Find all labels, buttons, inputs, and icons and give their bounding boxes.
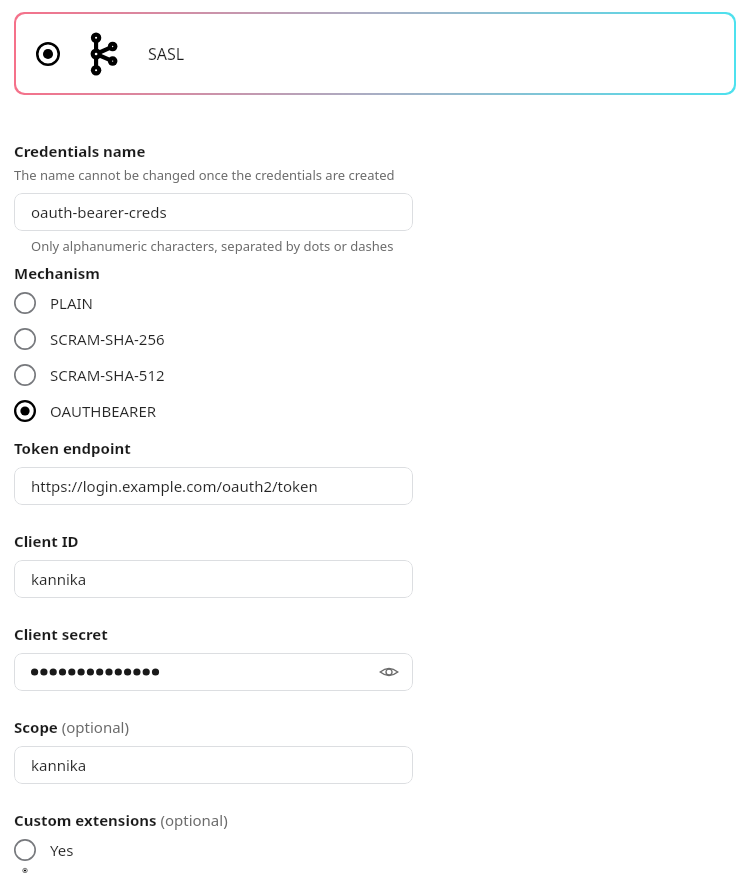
- staticText: SASL: [148, 43, 185, 65]
- staticText: Token endpoint: [14, 438, 131, 458]
- staticText: kannika: [31, 569, 87, 589]
- staticText: Only alphanumeric characters, separated …: [31, 237, 394, 255]
- staticText: PLAIN: [50, 293, 94, 313]
- button[interactable]: https://login.example.com/oauth2/token: [14, 467, 413, 505]
- staticText: Credentials name: [14, 141, 146, 161]
- staticText: Client ID: [14, 531, 79, 551]
- button[interactable]: SCRAM-SHA-512: [0, 357, 748, 393]
- staticText: Client secret: [14, 624, 108, 644]
- button[interactable]: SCRAM-SHA-256: [0, 321, 748, 357]
- button[interactable]: kannika: [14, 560, 413, 598]
- staticText: SCRAM-SHA-512: [50, 365, 165, 385]
- button[interactable]: No: [0, 868, 748, 873]
- button[interactable]: SASL: [16, 14, 734, 93]
- button[interactable]: PLAIN: [0, 285, 748, 321]
- staticText: Yes: [50, 840, 74, 860]
- button[interactable]: kannika: [14, 746, 413, 784]
- staticText: https://login.example.com/oauth2/token: [31, 476, 318, 496]
- button[interactable]: Show password: [14, 653, 413, 691]
- staticText: Mechanism: [14, 263, 100, 283]
- button[interactable]: OAUTHBEARER: [0, 393, 748, 429]
- staticText: kannika: [31, 755, 87, 775]
- staticText: The name cannot be changed once the cred…: [14, 166, 395, 184]
- staticText: SCRAM-SHA-256: [50, 329, 165, 349]
- staticText: Scope (optional): [14, 717, 129, 737]
- button[interactable]: Show password: [377, 660, 401, 684]
- staticText: oauth-bearer-creds: [31, 202, 167, 222]
- button[interactable]: Yes: [0, 832, 748, 868]
- staticText: Custom extensions (optional): [14, 810, 228, 830]
- button[interactable]: oauth-bearer-creds: [14, 193, 413, 231]
- staticText: OAUTHBEARER: [50, 401, 157, 421]
